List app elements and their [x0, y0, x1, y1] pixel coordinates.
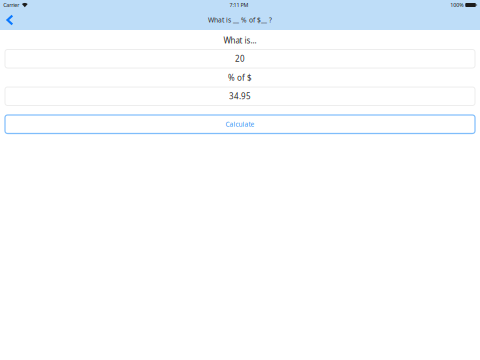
staticText: What is...	[223, 35, 256, 46]
staticText: What is __ % of $__ ?	[208, 16, 272, 24]
button[interactable]: 34.95	[5, 87, 475, 105]
staticText: 7:11 PM	[229, 1, 248, 9]
staticText: Carrier	[3, 1, 19, 9]
staticText: % of $	[228, 72, 252, 83]
button[interactable]: Back	[0, 10, 22, 30]
staticText: 20	[235, 53, 245, 64]
staticText: 100%	[450, 1, 463, 9]
staticText: 34.95	[229, 91, 251, 101]
staticText: Calculate	[225, 120, 254, 129]
button[interactable]: 20	[5, 49, 475, 68]
button[interactable]: Calculate	[5, 115, 475, 133]
